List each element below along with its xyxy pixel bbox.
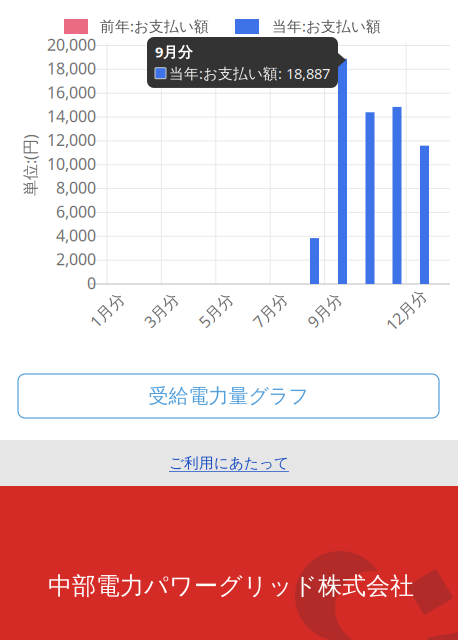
- staticText: 5月分: [195, 299, 236, 321]
- staticText: 12,000: [47, 129, 96, 150]
- staticText: ご利用にあたって: [169, 454, 289, 472]
- staticText: 2,000: [56, 248, 96, 270]
- staticText: 前年:お支払い額: [100, 16, 209, 36]
- staticText: 6,000: [56, 201, 96, 222]
- staticText: 4,000: [56, 225, 96, 246]
- staticText: 9月分: [304, 299, 345, 321]
- staticText: 10,000: [47, 153, 96, 174]
- button[interactable]: 受給電力量グラフ: [18, 374, 439, 418]
- staticText: 受給電力量グラフ: [148, 384, 308, 408]
- staticText: 7月分: [250, 299, 291, 321]
- button[interactable]: ご利用にあたって: [0, 440, 458, 486]
- staticText: 12月分: [381, 299, 431, 321]
- staticText: 中部電力パワーグリッド株式会社: [48, 571, 414, 601]
- staticText: 16,000: [47, 82, 96, 103]
- staticText: 14,000: [47, 105, 96, 127]
- staticText: 9月分: [155, 42, 193, 61]
- staticText: 当年:お支払い額: 18,887: [169, 63, 330, 83]
- staticText: 3月分: [141, 299, 182, 321]
- staticText: 当年:お支払い額: [272, 16, 381, 36]
- staticText: 20,000: [47, 34, 96, 55]
- staticText: 1月分: [86, 299, 127, 321]
- staticText: 単位:(円): [0, 154, 61, 176]
- staticText: 0: [87, 272, 96, 294]
- staticText: 8,000: [56, 177, 96, 198]
- staticText: 18,000: [47, 58, 96, 79]
